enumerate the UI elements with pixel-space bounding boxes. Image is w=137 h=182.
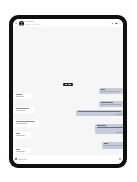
button[interactable]: [14, 132, 31, 139]
staticText: Thomas: [25, 20, 34, 23]
button[interactable]: [14, 148, 31, 153]
button[interactable]: Send: [13, 155, 123, 164]
button[interactable]: [99, 88, 123, 94]
button[interactable]: [102, 142, 123, 149]
button[interactable]: Back: [14, 21, 18, 25]
staticText: Online - Last seen: [25, 23, 41, 26]
button[interactable]: [99, 101, 123, 107]
button[interactable]: [63, 83, 73, 86]
button[interactable]: [14, 120, 39, 127]
button[interactable]: [14, 93, 32, 99]
button[interactable]: [14, 107, 35, 113]
button[interactable]: [76, 110, 123, 116]
button[interactable]: Video call: [115, 22, 118, 25]
button[interactable]: [95, 124, 123, 134]
button[interactable]: Call: [111, 22, 114, 25]
button[interactable]: Profile photo: [19, 21, 24, 26]
